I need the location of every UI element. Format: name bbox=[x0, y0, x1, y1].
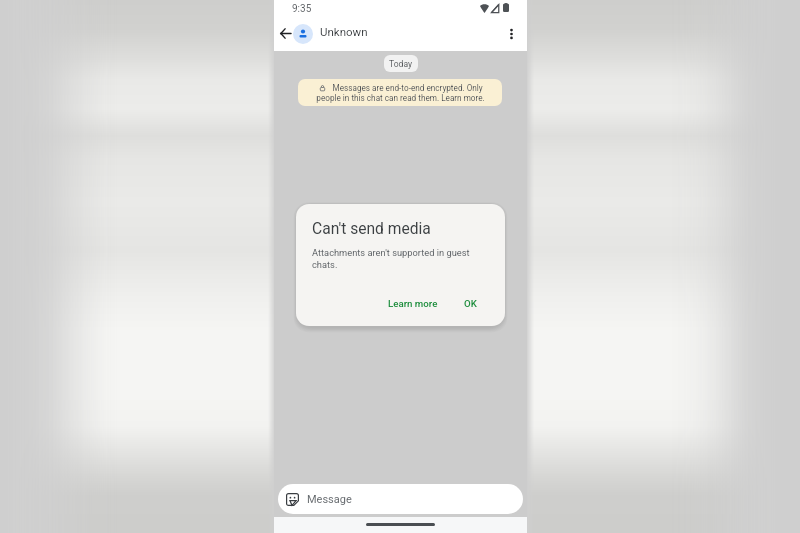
button[interactable]: Messages are end-to-end encrypted. Only … bbox=[298, 79, 502, 106]
staticText: Message bbox=[307, 493, 352, 506]
staticText: Learn more bbox=[388, 298, 438, 309]
button[interactable]: OK bbox=[459, 294, 482, 313]
staticText: OK bbox=[464, 298, 477, 309]
button[interactable]: Contact avatar bbox=[293, 24, 313, 44]
button[interactable]: Today bbox=[384, 55, 418, 72]
staticText: Can't send media bbox=[312, 220, 431, 238]
button[interactable]: More options bbox=[500, 23, 522, 45]
button[interactable]: Back bbox=[274, 22, 296, 44]
button[interactable]: Message bbox=[278, 484, 523, 514]
staticText: Messages are end-to-end encrypted. Only … bbox=[316, 83, 485, 103]
staticText: Attachments aren't supported in guest ch… bbox=[312, 247, 488, 270]
button[interactable]: Learn more bbox=[383, 294, 443, 313]
staticText: Unknown bbox=[320, 25, 368, 38]
staticText: Today bbox=[389, 59, 413, 69]
staticText: 9:35 bbox=[292, 3, 312, 15]
